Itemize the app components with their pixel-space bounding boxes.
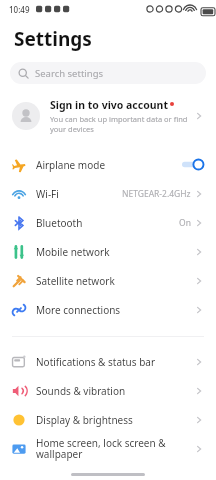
staticText: 10:49 — [9, 4, 30, 15]
staticText: Display & brightness — [36, 413, 194, 427]
staticText: Bluetooth — [36, 216, 179, 230]
button[interactable]: Sounds & vibration — [0, 376, 216, 405]
staticText: On — [179, 217, 191, 229]
staticText: Wi-Fi — [36, 187, 122, 201]
staticText: Sign in to vivo account — [50, 98, 168, 112]
button[interactable]: Satellite network — [0, 266, 216, 295]
staticText: Mobile network — [36, 245, 194, 259]
staticText: Sounds & vibration — [36, 384, 194, 398]
staticText: You can back up important data or find y… — [50, 114, 190, 134]
button[interactable]: Sign in to vivo account — [0, 92, 216, 140]
staticText: Search settings — [35, 67, 104, 80]
staticText: Airplane mode — [36, 158, 182, 172]
staticText: More connections — [36, 303, 194, 317]
other: Toggle — [182, 159, 204, 170]
staticText: Home screen, lock screen & wallpaper — [36, 436, 194, 461]
staticText: NETGEAR-2.4GHz — [122, 188, 191, 200]
button[interactable]: Wi-Fi — [0, 179, 216, 208]
button[interactable]: Home screen, lock screen & wallpaper — [0, 434, 216, 463]
button[interactable]: More connections — [0, 295, 216, 324]
button[interactable]: Notifications & status bar — [0, 347, 216, 376]
staticText: Satellite network — [36, 274, 194, 288]
staticText: Settings — [14, 26, 92, 52]
button[interactable]: Airplane mode — [0, 150, 216, 179]
button[interactable]: Display & brightness — [0, 405, 216, 434]
button[interactable]: Mobile network — [0, 237, 216, 266]
button[interactable]: Search settings — [10, 62, 206, 84]
button[interactable]: Bluetooth — [0, 208, 216, 237]
staticText: Notifications & status bar — [36, 355, 194, 369]
